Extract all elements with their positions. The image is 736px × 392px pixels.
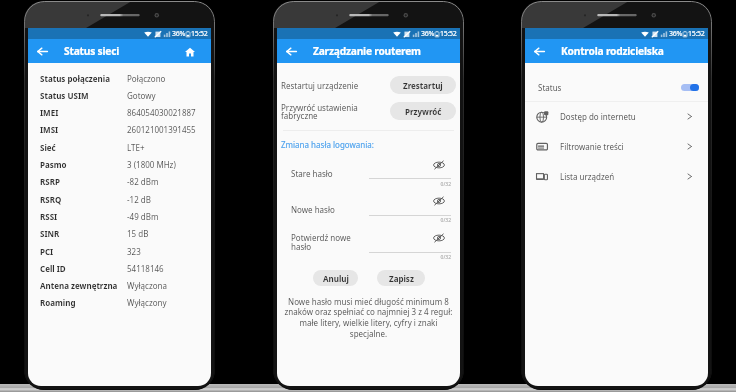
staticText: 0/32 [369,181,451,188]
staticText: Przywróć [405,106,442,117]
button[interactable]: Status [525,73,708,101]
staticText: Status sieci [64,44,120,58]
button[interactable]: Roaming [28,294,211,311]
button[interactable]: Status połączenia [28,70,211,87]
staticText: Przywróć ustawienia fabryczne [281,102,358,121]
staticText: Kontrola rodzicielska [561,44,664,58]
button[interactable]: Sieć [28,139,211,156]
staticText: IMEI [40,107,127,118]
staticText: Zapisz [389,273,414,284]
staticText: 864054030021887 [127,107,196,118]
button[interactable]: Status USIM [28,87,211,104]
button[interactable]: Filtrowanie treści [525,131,708,161]
button[interactable]: IMEI [28,104,211,121]
staticText: SINR [40,228,127,239]
staticText: RSSI [40,211,127,222]
button[interactable]: PCI [28,243,211,260]
staticText: 36% [421,29,434,39]
button[interactable]: RSRQ [28,191,211,208]
button[interactable]: Dostęp do internetu [525,101,708,131]
button[interactable]: Back [532,44,547,59]
staticText: 0/32 [369,217,451,224]
staticText: Status połączenia [40,73,127,84]
button[interactable]: Back [35,44,50,59]
staticText: Potwierdź nowe hasło [291,232,351,253]
staticText: Restartuj urządzenie [281,80,359,91]
staticText: Gotowy [127,90,156,101]
button[interactable]: Przywróć [390,102,456,120]
staticText: Lista urządzeń [560,171,685,182]
staticText: IMSI [40,124,127,135]
staticText: -49 dBm [127,211,159,222]
staticText: Roaming [40,297,127,308]
button[interactable]: Cell ID [28,260,211,277]
staticText: Stare hasło [291,168,333,179]
staticText: Anuluj [323,273,349,284]
button[interactable]: Anuluj [313,270,358,286]
staticText: Zarządzanie routerem [313,44,421,58]
staticText: 3 (1800 MHz) [127,159,176,170]
staticText: Cell ID [40,263,127,274]
staticText: Filtrowanie treści [560,141,685,152]
button[interactable]: Pasmo [28,156,211,173]
staticText: Antena zewnętrzna [40,280,127,291]
button[interactable]: RSRP [28,173,211,190]
staticText: -12 dB [127,194,151,205]
staticText: 15:52 [440,29,457,39]
button[interactable]: RSSI [28,208,211,225]
staticText: Nowe hasło musi mieć długość minimum 8 z… [282,296,455,340]
button[interactable]: Show password [433,159,445,171]
staticText: Pasmo [40,159,127,170]
staticText: 15:52 [191,29,208,39]
staticText: Zmiana hasła logowania: [281,139,374,150]
staticText: Dostęp do internetu [560,111,685,122]
button[interactable]: Antena zewnętrzna [28,277,211,294]
staticText: 323 [127,246,141,257]
staticText: 36% [669,29,682,39]
button[interactable]: Zapisz [377,270,425,286]
button[interactable]: SINR [28,225,211,242]
staticText: -82 dBm [127,176,159,187]
staticText: 15 dB [127,228,149,239]
button[interactable]: Back [284,44,299,59]
staticText: LTE+ [127,142,145,153]
staticText: RSRP [40,176,127,187]
staticText: 36% [172,29,185,39]
staticText: 260121001391455 [127,124,196,135]
button[interactable]: Lista urządzeń [525,161,708,191]
button[interactable]: Home [182,44,197,59]
button[interactable]: Show password [433,232,445,244]
staticText: Status USIM [40,90,127,101]
staticText: PCI [40,246,127,257]
staticText: Nowe hasło [291,204,335,215]
staticText: 54118146 [127,263,164,274]
staticText: RSRQ [40,194,127,205]
button[interactable]: Show password [433,195,445,207]
button[interactable]: Zrestartuj [390,76,456,94]
staticText: Zrestartuj [403,80,443,91]
staticText: Status [538,82,681,93]
staticText: Wyłączona [127,280,167,291]
staticText: Wyłączony [127,297,167,308]
staticText: Sieć [40,142,127,153]
button[interactable]: IMSI [28,121,211,138]
staticText: 0/32 [369,254,451,261]
staticText: 15:52 [688,29,705,39]
staticText: Połączono [127,73,166,84]
